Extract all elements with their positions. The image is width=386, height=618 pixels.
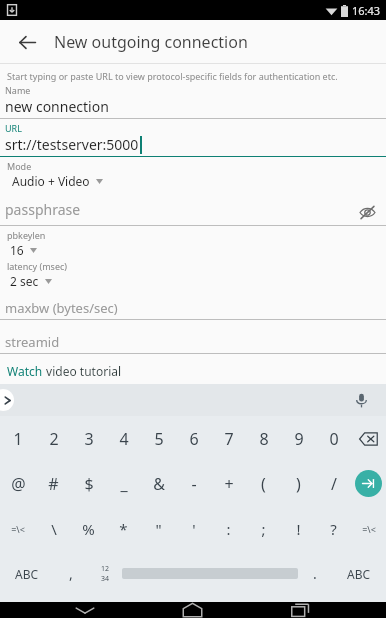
staticText: % — [82, 519, 95, 539]
button[interactable]: ABC — [0, 551, 54, 596]
staticText: ? — [330, 519, 337, 539]
staticText: ; — [261, 519, 266, 539]
button[interactable]: URL — [0, 119, 386, 157]
button[interactable]: =\< — [351, 506, 386, 551]
button[interactable]: ' — [176, 506, 211, 551]
staticText: maxbw (bytes/sec) — [5, 299, 118, 317]
staticText: pbkeylen — [7, 229, 46, 241]
button[interactable]: Show passphrase — [354, 199, 380, 225]
button[interactable]: $ — [71, 461, 106, 506]
button[interactable]: : — [211, 506, 246, 551]
button[interactable]: 6 — [176, 416, 211, 461]
staticText: , — [69, 564, 73, 583]
staticText: 6 — [189, 428, 199, 450]
staticText: 16:43 — [352, 3, 381, 18]
staticText: 8 — [259, 428, 269, 450]
button[interactable]: 5 — [141, 416, 176, 461]
staticText: : — [226, 519, 231, 539]
button[interactable]: 7 — [211, 416, 246, 461]
button[interactable]: maxbw (bytes/sec) — [0, 298, 386, 320]
button[interactable]: 4 — [106, 416, 141, 461]
button[interactable]: & — [141, 461, 176, 506]
button[interactable]: \ — [36, 506, 71, 551]
button[interactable]: 0 — [316, 416, 351, 461]
button[interactable]: Delete — [351, 416, 386, 461]
button[interactable]: passphrase — [0, 199, 386, 226]
button[interactable]: Back — [10, 25, 44, 59]
staticText: 2 — [49, 428, 59, 450]
staticText: streamid — [5, 333, 60, 351]
button[interactable]: Recent apps — [278, 602, 322, 618]
button[interactable]: Voice input — [348, 387, 374, 413]
button[interactable]: # — [36, 461, 71, 506]
button[interactable]: latency (msec) — [0, 260, 386, 289]
staticText: 16 — [10, 242, 24, 258]
button[interactable]: Expand suggestions — [0, 389, 14, 411]
button[interactable]: ) — [281, 461, 316, 506]
staticText: Name — [5, 84, 31, 96]
staticText: ABC — [347, 566, 371, 582]
staticText: latency (msec) — [7, 260, 68, 272]
button[interactable]: ; — [246, 506, 281, 551]
button[interactable]: + — [211, 461, 246, 506]
button[interactable]: Space — [122, 551, 298, 596]
button[interactable]: Enter — [351, 461, 386, 506]
button[interactable]: / — [316, 461, 351, 506]
button[interactable]: " — [141, 506, 176, 551]
button[interactable]: Watch — [7, 363, 122, 379]
button[interactable]: Hide keyboard — [63, 602, 107, 618]
staticText: & — [153, 473, 165, 495]
button[interactable]: 1 — [0, 416, 36, 461]
staticText: Mode — [7, 160, 32, 172]
staticText: 7 — [224, 428, 234, 450]
button[interactable]: Mode — [0, 160, 386, 189]
staticText: _ — [120, 473, 128, 495]
staticText: $ — [84, 473, 94, 495]
staticText: \ — [51, 519, 57, 539]
button[interactable]: Name — [0, 84, 386, 119]
staticText: + — [224, 473, 234, 495]
staticText: ! — [296, 519, 301, 539]
staticText: passphrase — [5, 200, 81, 219]
staticText: URL — [5, 122, 22, 134]
button[interactable]: 2 — [36, 416, 71, 461]
staticText: new connection — [5, 97, 109, 116]
staticText: 2 sec — [10, 273, 39, 289]
staticText: " — [155, 519, 162, 539]
staticText: Audio + Video — [12, 173, 90, 189]
button[interactable]: Numbers — [88, 551, 122, 596]
button[interactable]: % — [71, 506, 106, 551]
staticText: 0 — [329, 428, 339, 450]
button[interactable]: pbkeylen — [0, 229, 386, 258]
staticText: 9 — [294, 428, 304, 450]
button[interactable]: . — [298, 551, 332, 596]
button[interactable]: ! — [281, 506, 316, 551]
button[interactable]: streamid — [0, 332, 386, 354]
staticText: - — [191, 473, 197, 495]
staticText: / — [331, 473, 337, 495]
button[interactable]: , — [54, 551, 88, 596]
staticText: 1 — [13, 428, 23, 450]
button[interactable]: ? — [316, 506, 351, 551]
staticText: @ — [11, 473, 26, 495]
button[interactable]: - — [176, 461, 211, 506]
button[interactable]: * — [106, 506, 141, 551]
staticText: 4 — [119, 428, 129, 450]
button[interactable]: Home — [170, 602, 214, 618]
staticText: ABC — [15, 566, 39, 582]
staticText: =\< — [362, 523, 376, 535]
button[interactable]: =\< — [0, 506, 36, 551]
button[interactable]: ABC — [332, 551, 386, 596]
button[interactable]: 3 — [71, 416, 106, 461]
button[interactable]: 9 — [281, 416, 316, 461]
button[interactable]: @ — [0, 461, 36, 506]
staticText: Watch — [7, 363, 43, 379]
staticText: ( — [261, 473, 266, 495]
button[interactable]: _ — [106, 461, 141, 506]
button[interactable]: ( — [246, 461, 281, 506]
staticText: 12 — [101, 564, 110, 574]
staticText: video tutorial — [43, 363, 122, 379]
staticText: ) — [296, 473, 301, 495]
staticText: 3 — [84, 428, 94, 450]
button[interactable]: 8 — [246, 416, 281, 461]
